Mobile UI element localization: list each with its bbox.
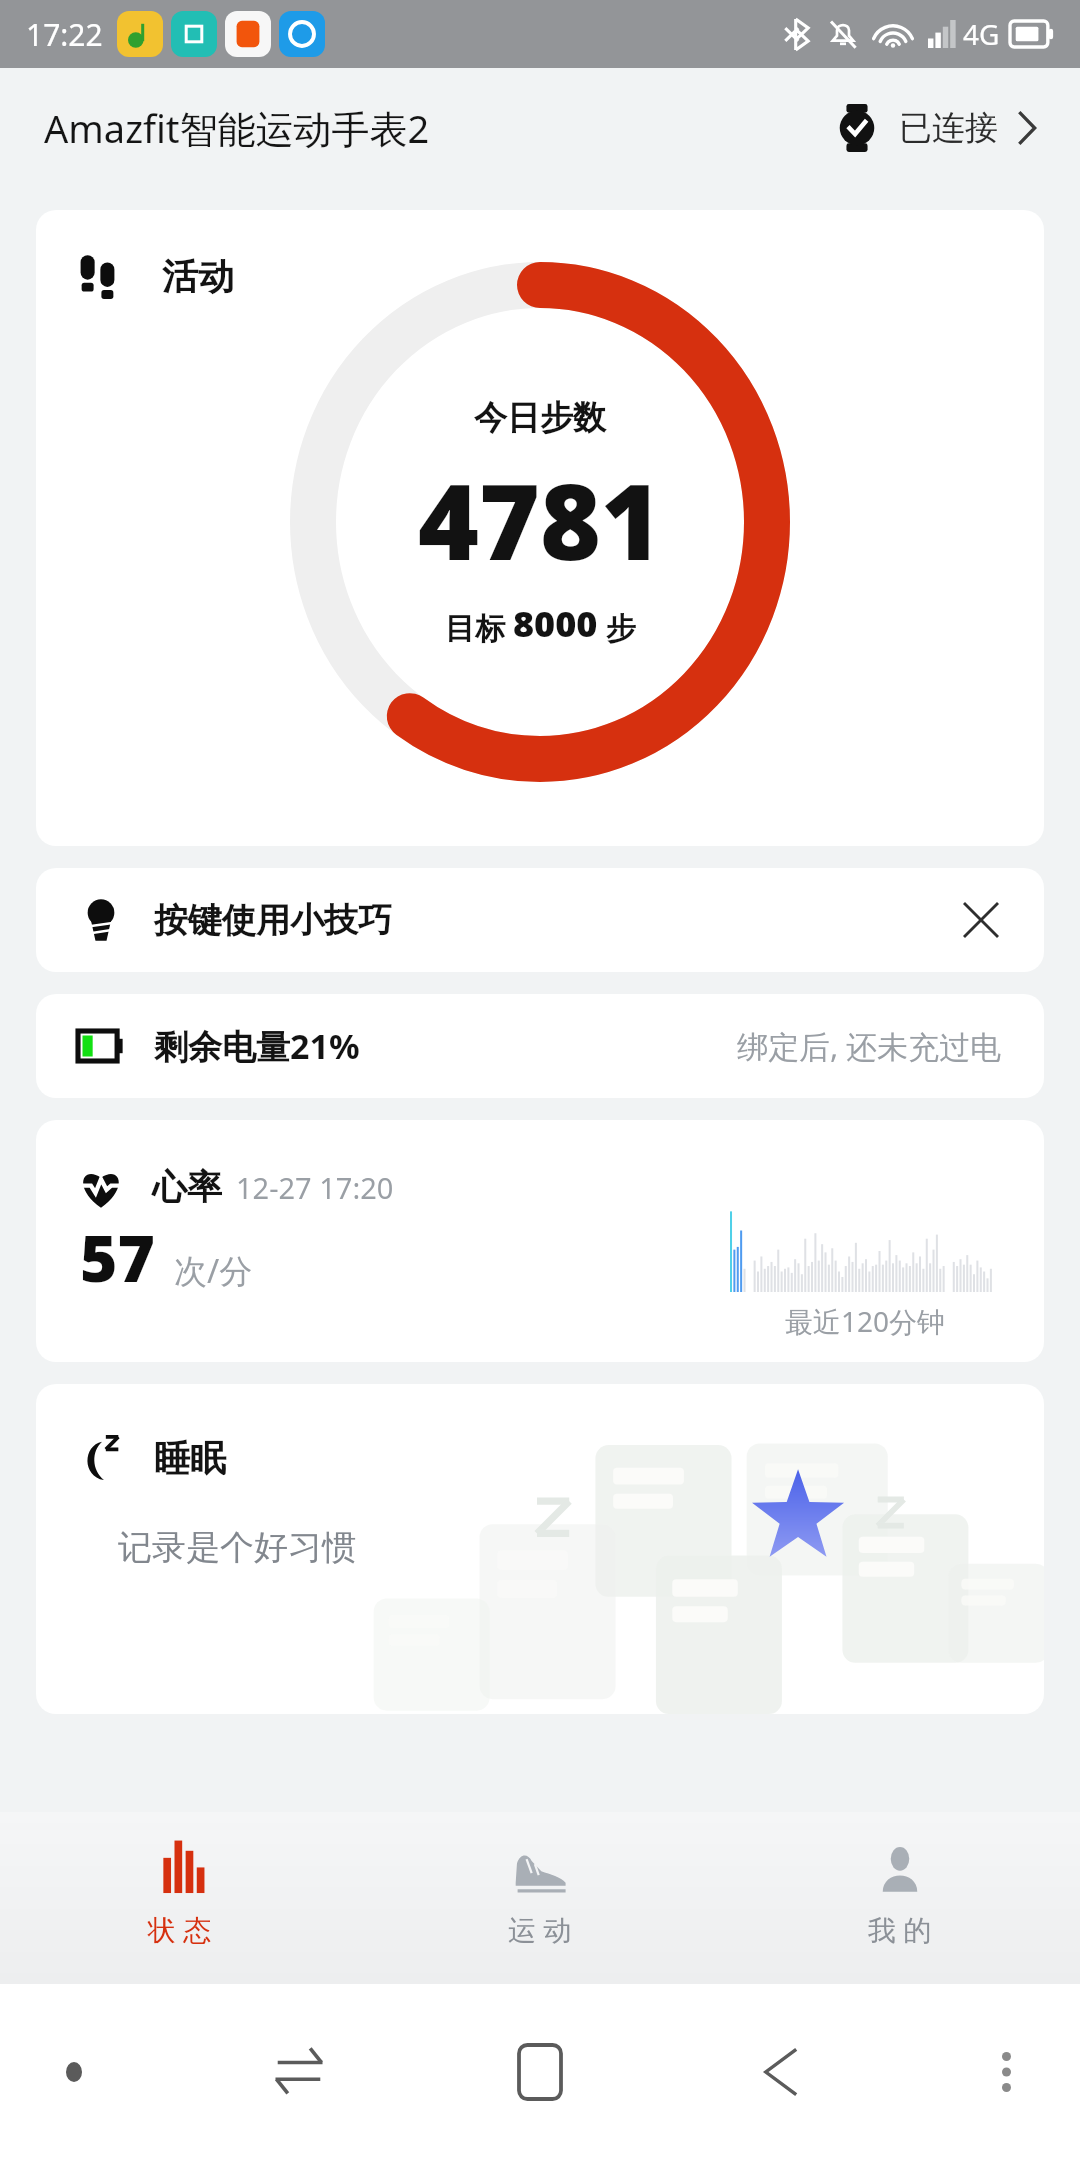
staticText: 最近120分钟	[785, 1302, 946, 1340]
button[interactable]: 最近任务	[496, 2028, 584, 2116]
staticText: 步	[598, 607, 636, 648]
button[interactable]: 睡眠	[36, 1384, 1044, 1714]
staticText: 目标	[445, 607, 513, 648]
staticText: Amazfit智能运动手表2	[44, 102, 430, 154]
staticText: 已连接	[899, 107, 998, 149]
staticText: 次/分	[174, 1248, 253, 1293]
button[interactable]: 我 的	[720, 1812, 1080, 1984]
button[interactable]: 切换	[255, 2028, 343, 2116]
staticText: 记录是个好习惯	[118, 1526, 356, 1569]
staticText: 57	[80, 1214, 156, 1301]
staticText: 绑定后, 还未充过电	[737, 1025, 1002, 1067]
button[interactable]: 状 态	[0, 1812, 360, 1984]
staticText: 心率	[152, 1165, 222, 1209]
button[interactable]: 已连接	[827, 94, 1044, 162]
staticText: 今日步数	[474, 397, 606, 439]
staticText: 活动	[162, 254, 234, 299]
staticText: 睡眠	[154, 1436, 226, 1481]
staticText: 运 动	[508, 1910, 572, 1948]
button[interactable]: 心率	[36, 1120, 1044, 1362]
button[interactable]: 运 动	[360, 1812, 720, 1984]
button[interactable]: 返回	[737, 2028, 825, 2116]
staticText: 我 的	[868, 1910, 932, 1948]
staticText: 17:22	[26, 14, 103, 55]
button[interactable]: 指示点	[46, 2044, 102, 2100]
staticText: 4G	[963, 15, 1000, 53]
button[interactable]: 更多	[978, 2044, 1034, 2100]
staticText: 状 态	[148, 1910, 212, 1948]
button[interactable]: 剩余电量21%	[36, 994, 1044, 1098]
button[interactable]: 按键使用小技巧	[36, 868, 1044, 972]
staticText: 4781	[418, 449, 662, 591]
staticText: 8000	[513, 599, 598, 648]
button[interactable]: 关闭	[950, 889, 1012, 951]
staticText: 剩余电量21%	[154, 1023, 360, 1069]
staticText: 12-27 17:20	[236, 1168, 394, 1207]
staticText: 按键使用小技巧	[154, 899, 392, 942]
button[interactable]: 活动	[36, 210, 1044, 846]
